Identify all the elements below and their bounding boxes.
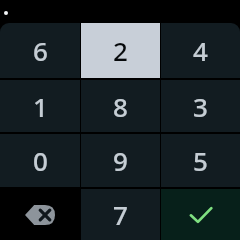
staticText: 8 (113, 89, 128, 124)
staticText: 6 (33, 33, 48, 68)
button[interactable]: 8 (81, 80, 160, 132)
button[interactable]: 6 (0, 23, 80, 78)
staticText: 4 (193, 33, 208, 68)
staticText: 2 (113, 33, 128, 68)
staticText: 3 (193, 89, 208, 124)
button[interactable]: 1 (0, 80, 80, 132)
button[interactable]: 7 (81, 189, 160, 240)
button[interactable]: 4 (161, 23, 240, 78)
staticText: 0 (33, 143, 48, 178)
button[interactable]: Confirm (161, 189, 240, 240)
button[interactable]: 9 (81, 134, 160, 187)
button[interactable]: 2 (81, 23, 160, 78)
button[interactable]: 5 (161, 134, 240, 187)
staticText: 1 (33, 89, 48, 124)
button[interactable]: 0 (0, 134, 80, 187)
button[interactable]: Backspace (0, 189, 80, 240)
staticText: 5 (193, 143, 208, 178)
staticText: 9 (113, 143, 128, 178)
button[interactable]: 3 (161, 80, 240, 132)
staticText: 7 (113, 197, 128, 232)
